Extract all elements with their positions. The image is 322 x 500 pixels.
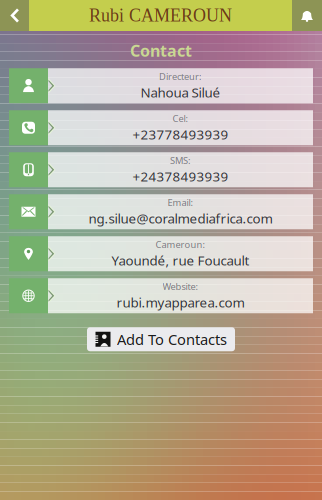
- staticText: Directeur:: [159, 70, 202, 83]
- staticText: Rubi CAMEROUN: [89, 5, 232, 25]
- staticText: +23778493939: [132, 126, 228, 143]
- staticText: Nahoua Silué: [140, 84, 220, 101]
- button[interactable]: Back: [0, 0, 29, 31]
- button[interactable]: Add To Contacts: [87, 327, 235, 351]
- button[interactable]: Cameroun:: [9, 236, 313, 271]
- button[interactable]: Cel:: [9, 110, 313, 145]
- staticText: Yaoundé, rue Foucault: [111, 252, 249, 269]
- staticText: SMS:: [170, 154, 191, 167]
- staticText: rubi.myapparea.com: [116, 294, 244, 311]
- staticText: Add To Contacts: [117, 329, 227, 349]
- staticText: +24378493939: [132, 168, 228, 185]
- button[interactable]: Notifications: [292, 0, 322, 31]
- staticText: Website:: [162, 280, 198, 293]
- staticText: Email:: [167, 196, 193, 209]
- button[interactable]: Directeur:: [9, 68, 313, 103]
- button[interactable]: Website:: [9, 278, 313, 313]
- button[interactable]: SMS:: [9, 152, 313, 187]
- staticText: Cameroun:: [155, 238, 205, 251]
- staticText: Contact: [130, 40, 192, 61]
- staticText: ng.silue@coralmediafrica.com: [88, 210, 272, 227]
- button[interactable]: Email:: [9, 194, 313, 229]
- staticText: Cel:: [172, 112, 188, 125]
